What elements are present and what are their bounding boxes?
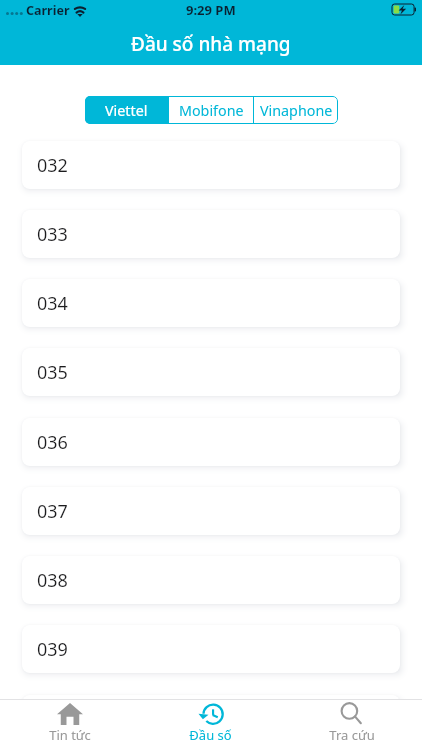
button[interactable]: 037 [22, 487, 400, 535]
staticText: Mobifone [179, 101, 244, 120]
staticText: 081 [37, 707, 68, 732]
button[interactable]: Tra cứu [281, 700, 422, 747]
button[interactable]: 036 [22, 418, 400, 466]
staticText: 034 [37, 291, 68, 316]
button[interactable]: 035 [22, 348, 400, 396]
button[interactable]: Viettel [85, 96, 168, 124]
staticText: 035 [37, 360, 68, 385]
button[interactable]: Vinaphone [254, 96, 338, 124]
staticText: Vinaphone [260, 101, 333, 120]
staticText: 033 [37, 222, 68, 247]
staticText: 9:29 PM [186, 1, 236, 19]
staticText: Đầu số nhà mạng [131, 31, 291, 57]
staticText: Tin tức [49, 726, 91, 744]
staticText: Carrier [26, 2, 70, 19]
staticText: Tra cứu [329, 726, 375, 744]
button[interactable]: 034 [22, 279, 400, 327]
button[interactable]: Mobifone [169, 96, 253, 124]
button[interactable]: 033 [22, 210, 400, 258]
button[interactable]: Đầu số [140, 700, 281, 747]
staticText: Viettel [105, 101, 148, 120]
staticText: 036 [37, 430, 68, 455]
button[interactable]: 081 [22, 695, 400, 743]
staticText: 032 [37, 153, 68, 178]
staticText: Đầu số [189, 726, 232, 744]
button[interactable]: 032 [22, 141, 400, 189]
staticText: 038 [37, 568, 68, 593]
button[interactable]: 039 [22, 625, 400, 673]
button[interactable]: Tin tức [0, 700, 140, 747]
button[interactable]: 038 [22, 556, 400, 604]
staticText: 037 [37, 499, 68, 524]
staticText: 039 [37, 637, 68, 662]
